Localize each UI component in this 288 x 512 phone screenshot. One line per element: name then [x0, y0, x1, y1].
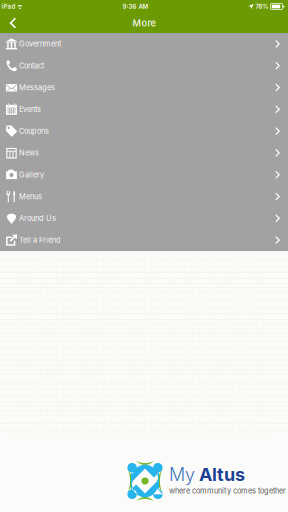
staticText: Around Us — [19, 214, 56, 223]
button[interactable]: Messages — [0, 77, 288, 98]
button[interactable]: Around Us — [0, 207, 288, 229]
staticText: Messages — [19, 83, 55, 92]
staticText: Tell a Friend — [19, 236, 61, 245]
staticText: My — [169, 464, 195, 485]
staticText: More — [132, 17, 155, 29]
button[interactable]: Contact — [0, 55, 288, 77]
staticText: Gallery — [19, 170, 44, 179]
staticText: Coupons — [19, 127, 49, 136]
button[interactable]: News — [0, 142, 288, 164]
staticText: Contact — [19, 61, 44, 70]
button[interactable]: Events — [0, 98, 288, 120]
staticText: Government — [19, 39, 61, 48]
staticText: 9:36 AM — [123, 3, 149, 10]
staticText: iPad — [1, 3, 15, 10]
staticText: Altus — [195, 464, 245, 485]
button[interactable]: Gallery — [0, 164, 288, 186]
staticText: News — [19, 148, 39, 157]
button[interactable]: Government — [0, 33, 288, 55]
button[interactable]: Coupons — [0, 120, 288, 142]
button[interactable]: Back — [0, 13, 26, 33]
staticText: Events — [19, 105, 41, 114]
staticText: Menus — [19, 192, 42, 201]
staticText: where community comes together — [169, 486, 286, 495]
button[interactable]: Tell a Friend — [0, 229, 288, 251]
button[interactable]: Menus — [0, 186, 288, 207]
staticText: 78% — [256, 3, 269, 10]
